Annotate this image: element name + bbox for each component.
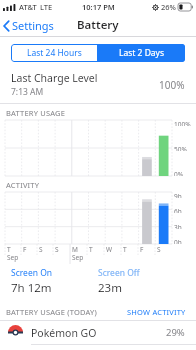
staticText: 26% [161,2,176,12]
staticText: Sep 23 [72,253,87,264]
staticText: 100% [174,120,191,126]
staticText: 7:13 AM [11,86,44,98]
staticText: Battery [77,17,119,33]
staticText: 10:17 PM [82,2,115,12]
staticText: Screen On [11,267,53,279]
staticText: 7h 12m [11,280,52,296]
staticText: 100% [159,78,185,92]
button[interactable]: SHOW ACTIVITY [125,306,188,318]
button[interactable]: Settings [0,16,60,35]
staticText: 6h [174,207,182,213]
staticText: 3h [174,223,182,229]
staticText: Pokémon GO [31,326,166,340]
staticText: ACTIVITY [6,180,40,190]
staticText: W [106,245,113,254]
staticText: 9h [174,192,182,198]
staticText: 29% [166,326,185,339]
staticText: F [140,245,144,254]
staticText: Last 2 Days [119,47,165,59]
staticText: Last 24 Hours [27,47,82,59]
staticText: T [123,245,127,254]
staticText: 0h [174,238,182,244]
staticText: Last Charge Level [11,71,98,85]
staticText: T [7,245,11,254]
staticText: S [39,245,43,254]
staticText: T [89,245,93,254]
staticText: Screen Off [98,267,140,279]
staticText: AT&T [19,2,37,12]
staticText: S [55,245,59,254]
staticText: M [72,245,78,254]
staticText: Settings [12,18,54,33]
staticText: BATTERY USAGE [6,108,66,118]
staticText: 23m [98,280,122,296]
staticText: SHOW ACTIVITY [127,307,186,317]
staticText: 0% [174,170,184,176]
button[interactable]: Pokémon GO [0,321,196,344]
staticText: LTE [40,2,53,12]
button[interactable]: Last Charge Level [0,69,196,103]
staticText: BATTERY USAGE (TODAY) [6,307,97,317]
staticText: 50% [174,145,187,151]
staticText: S [157,245,161,254]
button[interactable]: Last 24 Hours [11,44,97,62]
staticText: F [23,245,27,254]
button[interactable]: Last 2 Days [98,44,185,62]
staticText: Sep 20 [7,253,21,264]
